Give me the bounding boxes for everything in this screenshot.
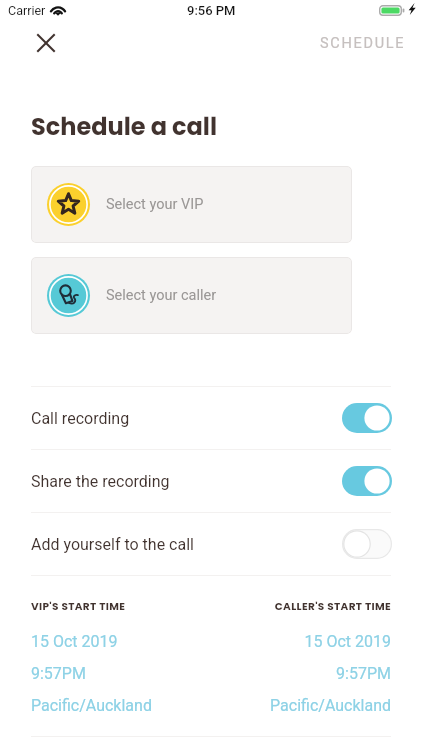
- staticText: Schedule a call: [31, 110, 218, 144]
- staticText: 9:56 PM: [187, 3, 236, 18]
- staticText: 9:57PM: [31, 664, 336, 683]
- staticText: Select your VIP: [106, 196, 204, 213]
- button[interactable]: Select your VIP: [31, 166, 352, 243]
- button[interactable]: Close: [28, 25, 64, 61]
- staticText: Pacific/Auckland: [31, 696, 270, 715]
- staticText: Share the recording: [31, 472, 170, 491]
- staticText: SCHEDULE: [320, 35, 406, 52]
- staticText: Pacific/Auckland: [270, 696, 391, 715]
- button[interactable]: Add yourself to the call: [0, 513, 422, 575]
- staticText: Select your caller: [106, 287, 217, 304]
- button[interactable]: Select your caller: [31, 257, 352, 334]
- staticText: Carrier: [8, 3, 46, 18]
- button[interactable]: Call recording: [0, 387, 422, 449]
- button[interactable]: SCHEDULE: [312, 29, 414, 58]
- staticText: 15 Oct 2019: [31, 632, 304, 651]
- staticText: 15 Oct 2019: [304, 632, 391, 651]
- staticText: 9:57PM: [336, 664, 391, 683]
- staticText: Add yourself to the call: [31, 535, 194, 554]
- button[interactable]: Share the recording: [0, 450, 422, 512]
- staticText: VIP'S START TIME: [31, 599, 274, 614]
- staticText: Call recording: [31, 409, 130, 428]
- staticText: CALLER'S START TIME: [274, 599, 391, 614]
